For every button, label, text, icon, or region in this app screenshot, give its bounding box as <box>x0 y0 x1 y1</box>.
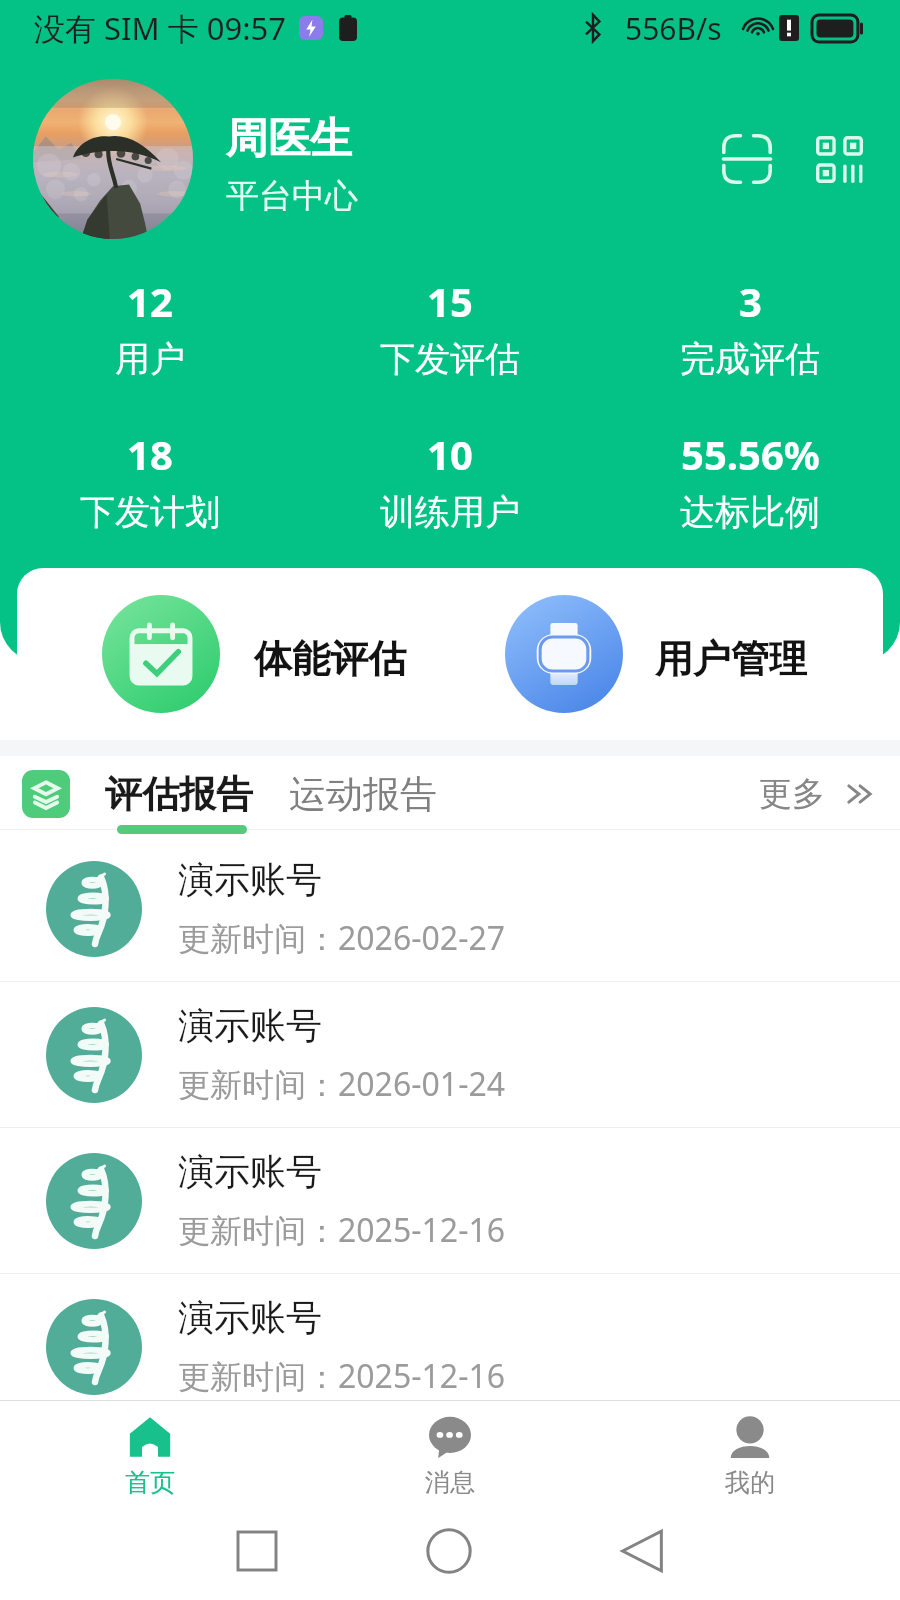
staticText: 更多 <box>759 773 825 815</box>
staticText: 下发评估 <box>380 337 520 381</box>
button[interactable]: QR code <box>808 128 870 190</box>
staticText: 周医生 <box>226 113 352 166</box>
staticText: 达标比例 <box>680 490 820 534</box>
staticText: 下发计划 <box>80 490 220 534</box>
staticText: 更新时间：2025-12-16 <box>178 1208 506 1252</box>
staticText: 没有 SIM 卡 09:57 <box>34 7 287 49</box>
button[interactable]: 消息 <box>300 1413 600 1500</box>
staticText: 更新时间：2026-01-24 <box>178 1062 506 1106</box>
staticText: 消息 <box>425 1467 475 1498</box>
staticText: 评估报告 <box>105 771 253 818</box>
button[interactable]: 演示账号 <box>0 836 900 981</box>
staticText: 演示账号 <box>178 1003 322 1048</box>
staticText: 体能评估 <box>254 635 406 683</box>
staticText: 首页 <box>125 1467 175 1498</box>
staticText: 训练用户 <box>380 490 520 534</box>
staticText: 平台中心 <box>226 175 358 217</box>
button[interactable]: 更多 <box>759 752 876 836</box>
staticText: 18 <box>127 427 173 481</box>
button[interactable]: 运动报告 <box>289 752 437 836</box>
button[interactable]: Reports <box>22 770 70 818</box>
button[interactable]: 体能评估 <box>17 568 420 740</box>
button[interactable]: Scan code <box>714 126 780 192</box>
staticText: 我的 <box>725 1467 775 1498</box>
staticText: 3 <box>739 274 762 328</box>
staticText: 更新时间：2026-02-27 <box>178 916 506 960</box>
staticText: 556B/s <box>625 8 722 49</box>
button[interactable]: 演示账号 <box>0 1274 900 1419</box>
button[interactable]: 评估报告 <box>105 752 253 836</box>
button[interactable]: 首页 <box>0 1413 300 1500</box>
staticText: 演示账号 <box>178 1295 322 1340</box>
staticText: 10 <box>427 427 473 481</box>
staticText: 用户管理 <box>655 635 807 683</box>
staticText: 演示账号 <box>178 857 322 902</box>
button[interactable]: 我的 <box>600 1413 900 1500</box>
staticText: 完成评估 <box>680 337 820 381</box>
staticText: 运动报告 <box>289 771 437 818</box>
button[interactable]: 演示账号 <box>0 1128 900 1273</box>
staticText: 用户 <box>115 337 185 381</box>
staticText: 55.56% <box>681 427 820 481</box>
staticText: 12 <box>127 274 173 328</box>
staticText: 更新时间：2025-12-16 <box>178 1354 506 1398</box>
button[interactable]: 演示账号 <box>0 982 900 1127</box>
staticText: 15 <box>427 274 473 328</box>
staticText: 演示账号 <box>178 1149 322 1194</box>
button[interactable]: 用户管理 <box>420 568 883 740</box>
